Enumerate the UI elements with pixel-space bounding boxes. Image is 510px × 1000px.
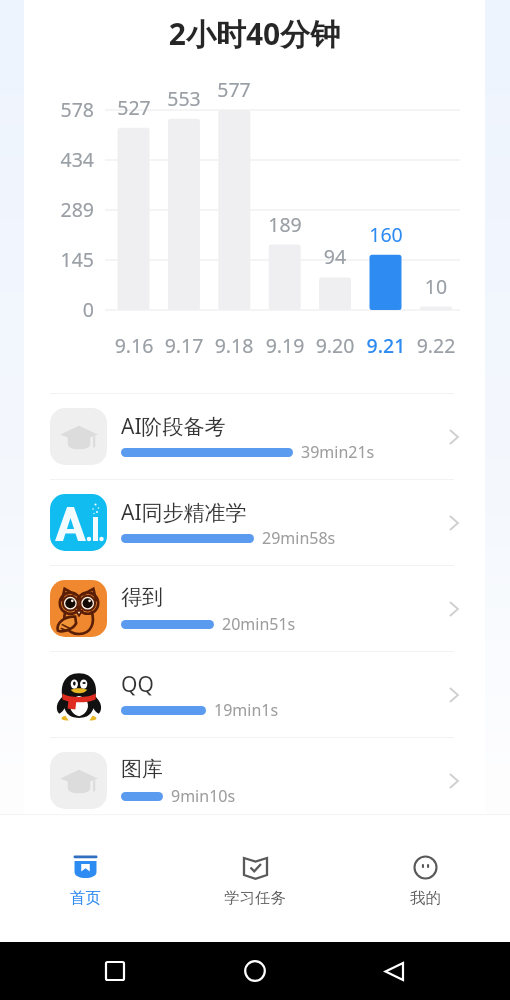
staticText: 553 bbox=[149, 85, 219, 112]
staticText: 20min51s bbox=[222, 613, 296, 635]
staticText: 9.21 bbox=[351, 332, 421, 359]
staticText: 94 bbox=[300, 243, 370, 270]
button[interactable]: 学习任务 bbox=[170, 816, 340, 942]
staticText: 434 bbox=[24, 146, 94, 173]
staticText: 189 bbox=[250, 211, 320, 238]
button[interactable]: QQ bbox=[24, 652, 485, 737]
staticText: 得到 bbox=[121, 584, 163, 610]
staticText: 图库 bbox=[121, 756, 163, 782]
staticText: 160 bbox=[351, 221, 421, 248]
staticText: 289 bbox=[24, 196, 94, 223]
staticText: AI阶段备考 bbox=[121, 412, 226, 441]
staticText: 学习任务 bbox=[224, 888, 286, 908]
button[interactable]: 图库 bbox=[24, 738, 485, 823]
staticText: 0 bbox=[24, 296, 94, 323]
button[interactable]: AI阶段备考 bbox=[24, 394, 485, 479]
staticText: 9.18 bbox=[199, 332, 269, 359]
button[interactable]: Recent apps bbox=[105, 961, 125, 981]
staticText: 577 bbox=[199, 76, 269, 103]
button[interactable]: 我的 bbox=[340, 816, 510, 942]
staticText: 19min1s bbox=[214, 699, 279, 721]
staticText: 9.16 bbox=[99, 332, 169, 359]
staticText: QQ bbox=[121, 670, 154, 699]
staticText: 29min58s bbox=[262, 527, 336, 549]
staticText: 2小时40分钟 bbox=[24, 13, 485, 54]
button[interactable]: 得到 bbox=[24, 566, 485, 651]
staticText: 578 bbox=[24, 96, 94, 123]
button[interactable]: Home bbox=[244, 960, 266, 982]
staticText: 我的 bbox=[410, 888, 441, 908]
button[interactable]: 首页 bbox=[0, 816, 170, 942]
staticText: 9.19 bbox=[250, 332, 320, 359]
staticText: 首页 bbox=[70, 888, 101, 908]
staticText: 527 bbox=[99, 94, 169, 121]
staticText: 9.20 bbox=[300, 332, 370, 359]
staticText: 9min10s bbox=[171, 785, 236, 807]
staticText: 10 bbox=[401, 273, 471, 300]
button[interactable]: AI同步精准学 bbox=[24, 480, 485, 565]
staticText: 145 bbox=[24, 246, 94, 273]
button[interactable]: Back bbox=[384, 961, 405, 982]
staticText: AI同步精准学 bbox=[121, 498, 247, 527]
staticText: 9.22 bbox=[401, 332, 471, 359]
staticText: 39min21s bbox=[301, 441, 375, 463]
staticText: 9.17 bbox=[149, 332, 219, 359]
